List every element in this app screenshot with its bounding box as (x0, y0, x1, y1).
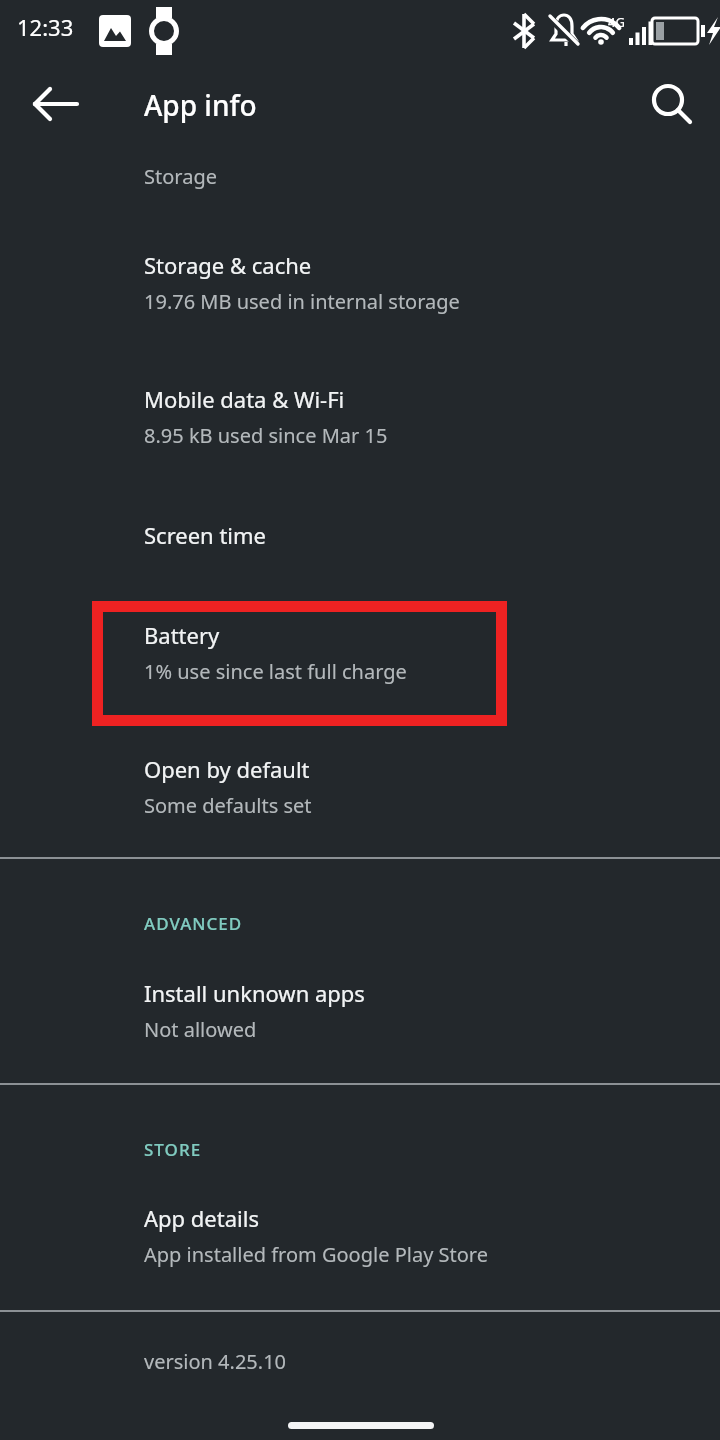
button[interactable]: Open by default (0, 742, 720, 837)
staticText: Mobile data & Wi-Fi (144, 384, 345, 414)
staticText: App info (144, 86, 257, 124)
button[interactable]: Search (639, 72, 703, 136)
button[interactable]: App details (0, 1191, 720, 1286)
staticText: App installed from Google Play Store (144, 1241, 488, 1268)
button[interactable]: Storage & cache (0, 238, 720, 333)
staticText: Some defaults set (144, 792, 312, 819)
staticText: Install unknown apps (144, 978, 365, 1008)
button[interactable]: Battery (0, 608, 720, 703)
staticText: Storage (144, 163, 217, 190)
staticText: version 4.25.10 (144, 1348, 287, 1375)
staticText: 12:33 (17, 12, 74, 42)
button[interactable]: Screen time (0, 508, 720, 568)
staticText: Storage & cache (144, 250, 312, 280)
button[interactable]: Install unknown apps (0, 966, 720, 1061)
staticText: 19.76 MB used in internal storage (144, 288, 460, 315)
staticText: 4G (608, 13, 625, 31)
staticText: Open by default (144, 754, 310, 784)
button[interactable]: version 4.25.10 (0, 1338, 720, 1400)
staticText: ADVANCED (144, 912, 243, 935)
button[interactable]: Mobile data & Wi-Fi (0, 372, 720, 467)
staticText: Screen time (144, 520, 267, 550)
staticText: 8.95 kB used since Mar 15 (144, 422, 388, 449)
staticText: Not allowed (144, 1016, 257, 1043)
staticText: Battery (144, 620, 220, 650)
staticText: 1% use since last full charge (144, 658, 407, 685)
button[interactable]: Back (24, 72, 88, 136)
staticText: STORE (144, 1138, 202, 1161)
staticText: App details (144, 1203, 259, 1233)
